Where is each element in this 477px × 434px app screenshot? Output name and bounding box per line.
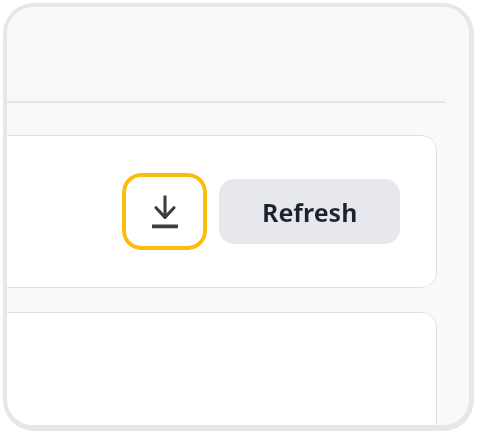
staticText: Refresh bbox=[262, 195, 358, 229]
button[interactable] bbox=[7, 312, 437, 425]
button[interactable]: Download bbox=[122, 173, 207, 250]
button[interactable]: Refresh bbox=[219, 179, 400, 244]
